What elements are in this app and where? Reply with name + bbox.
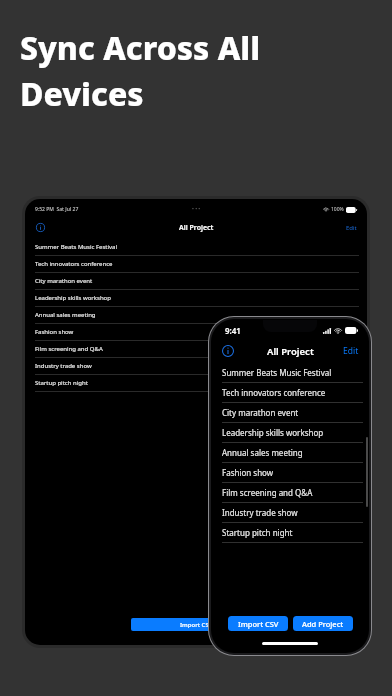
staticText: Fashion show — [222, 467, 274, 478]
button[interactable]: City marathon event — [25, 273, 367, 290]
staticText: Startup pitch night — [35, 379, 88, 387]
staticText: Annual sales meeting — [222, 447, 303, 458]
staticText: • • • — [192, 206, 201, 213]
staticText: Add Project — [302, 619, 344, 629]
button[interactable]: Edit — [346, 224, 357, 232]
staticText: Edit — [346, 224, 357, 232]
button[interactable]: Startup pitch night — [211, 523, 369, 543]
staticText: City marathon event — [35, 277, 93, 285]
button[interactable]: Summer Beats Music Festival — [211, 363, 369, 383]
staticText: All Project — [179, 223, 214, 233]
button[interactable]: Industry trade show — [211, 503, 369, 523]
staticText: Import CSV — [180, 621, 213, 629]
staticText: Industry trade show — [222, 507, 298, 518]
button[interactable]: Leadership skills workshop — [25, 290, 367, 307]
staticText: Summer Beats Music Festival — [35, 243, 117, 251]
staticText: Devices — [20, 72, 144, 116]
button[interactable]: Film screening and Q&A — [211, 483, 369, 503]
button[interactable]: Startup pitch night — [25, 375, 367, 392]
staticText: Startup pitch night — [222, 527, 293, 538]
button[interactable]: Tech innovators conference — [211, 383, 369, 403]
button[interactable]: Info — [35, 222, 46, 233]
staticText: Summer Beats Music Festival — [222, 367, 332, 378]
staticText: 100% — [331, 206, 344, 213]
button[interactable]: Annual sales meeting — [25, 307, 367, 324]
staticText: Annual sales meeting — [35, 311, 96, 319]
button[interactable]: Annual sales meeting — [211, 443, 369, 463]
staticText: Film screening and Q&A — [35, 345, 103, 353]
button[interactable]: Leadership skills workshop — [211, 423, 369, 443]
staticText: Import CSV — [238, 619, 279, 629]
staticText: Tech innovators conference — [35, 260, 113, 268]
button[interactable]: Industry trade show — [25, 358, 367, 375]
button[interactable]: Info — [221, 344, 235, 358]
staticText: City marathon event — [222, 407, 299, 418]
staticText: Sync Across All — [20, 26, 261, 70]
staticText: Leadership skills workshop — [35, 294, 111, 302]
staticText: 9:52 PM Sat Jul 27 — [35, 206, 79, 213]
staticText: Edit — [343, 345, 359, 357]
button[interactable]: Import CSV — [131, 618, 262, 631]
button[interactable]: Film screening and Q&A — [25, 341, 367, 358]
button[interactable]: Tech innovators conference — [25, 256, 367, 273]
staticText: Film screening and Q&A — [222, 487, 313, 498]
button[interactable]: Fashion show — [211, 463, 369, 483]
button[interactable]: City marathon event — [211, 403, 369, 423]
staticText: Leadership skills workshop — [222, 427, 324, 438]
staticText: Fashion show — [35, 328, 74, 336]
button[interactable]: Summer Beats Music Festival — [25, 239, 367, 256]
staticText: Tech innovators conference — [222, 387, 326, 398]
button[interactable]: Edit — [343, 345, 359, 357]
button[interactable]: Fashion show — [25, 324, 367, 341]
button[interactable]: Add Project — [293, 616, 353, 631]
staticText: 9:41 — [225, 325, 241, 336]
button[interactable]: Import CSV — [228, 616, 288, 631]
staticText: Industry trade show — [35, 362, 92, 370]
staticText: All Project — [267, 345, 314, 358]
